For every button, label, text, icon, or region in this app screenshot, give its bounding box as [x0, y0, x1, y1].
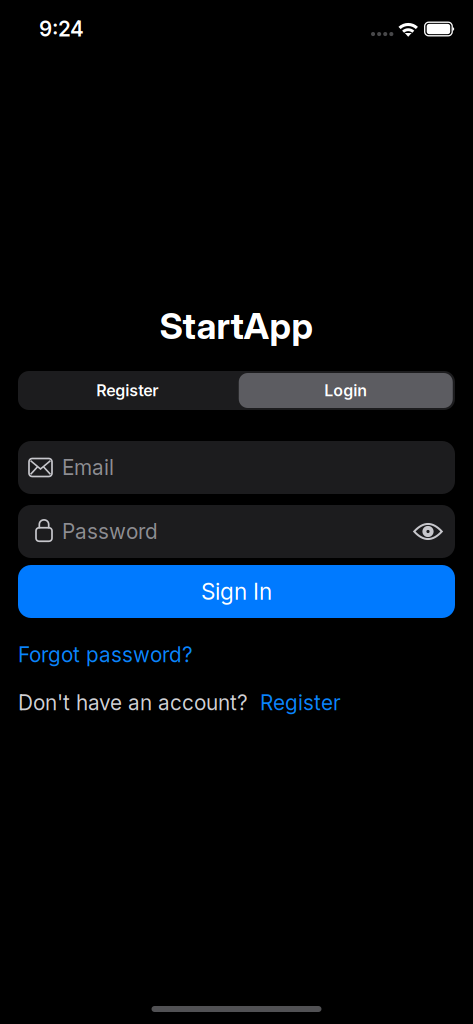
button[interactable]: Register [18, 371, 236, 410]
button[interactable]: Register [260, 690, 341, 715]
staticText: Email [62, 455, 114, 480]
button[interactable]: Show password [413, 522, 443, 541]
staticText: Register [260, 690, 341, 715]
button[interactable]: Sign In [18, 565, 455, 618]
staticText: Sign In [201, 578, 272, 605]
staticText: StartApp [159, 304, 313, 348]
staticText: Login [324, 381, 367, 400]
staticText: Don't have an account? [18, 690, 248, 715]
staticText: Forgot password? [18, 642, 193, 667]
staticText: Register [96, 381, 158, 400]
staticText: Password [62, 519, 158, 544]
staticText: 9:24 [39, 16, 84, 41]
button[interactable]: Forgot password? [18, 642, 193, 667]
button[interactable]: Login [236, 371, 455, 410]
